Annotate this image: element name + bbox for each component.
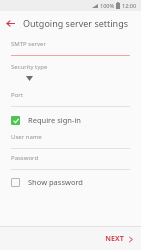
staticText: 100% xyxy=(100,2,115,9)
button[interactable]: NEXT xyxy=(97,230,141,248)
button[interactable]: Navigate up xyxy=(0,13,20,33)
button[interactable]: Show password xyxy=(0,173,141,191)
button[interactable]: Require sign-in xyxy=(0,111,141,129)
staticText: Outgoing server settings xyxy=(23,17,129,29)
staticText: Port xyxy=(11,91,23,99)
staticText: NEXT xyxy=(105,234,124,244)
staticText: Password xyxy=(11,154,39,162)
staticText: 12:00 xyxy=(122,2,137,9)
button[interactable]: Security type xyxy=(0,56,141,86)
staticText: SMTP server xyxy=(11,40,46,48)
staticText: Security type xyxy=(11,63,48,71)
staticText: Require sign-in xyxy=(28,115,81,125)
button[interactable]: SMTP server xyxy=(0,34,141,56)
button[interactable]: Password xyxy=(0,149,141,170)
button[interactable]: User name xyxy=(0,129,141,149)
button[interactable]: Port xyxy=(0,86,141,107)
staticText: Show password xyxy=(28,177,83,187)
staticText: User name xyxy=(11,133,42,141)
